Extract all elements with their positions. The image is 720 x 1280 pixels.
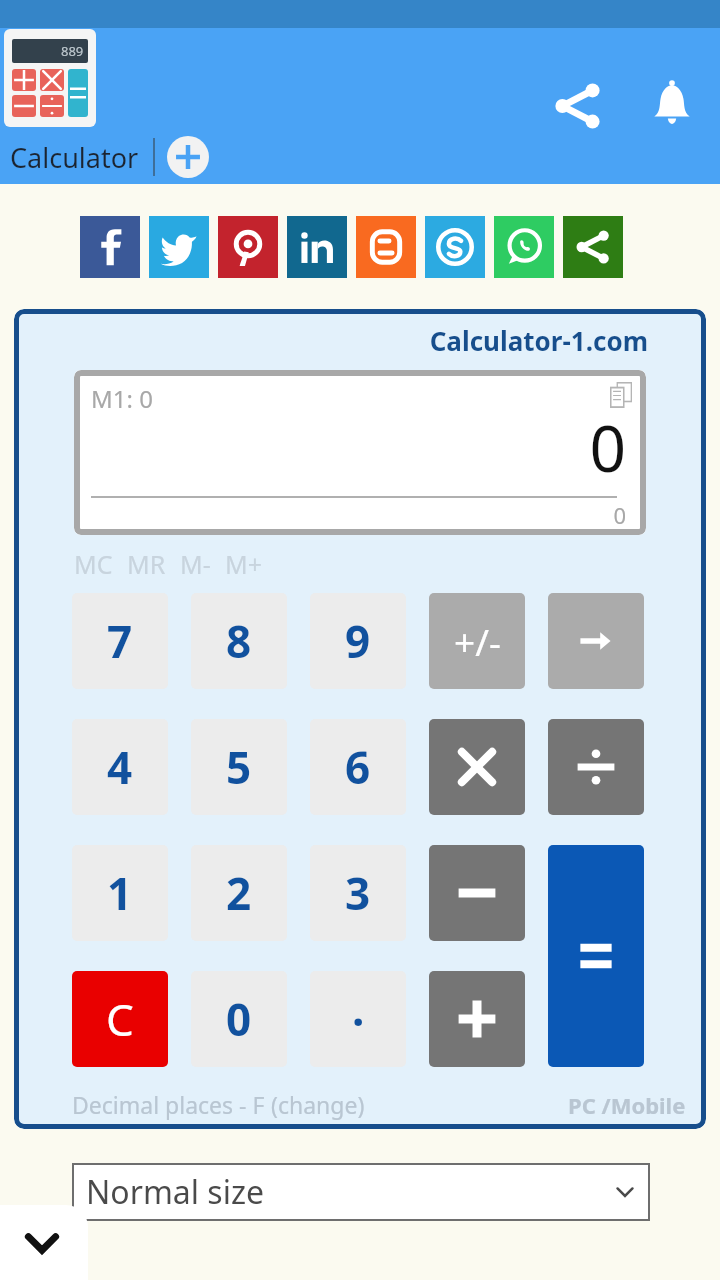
button[interactable]: Clear <box>72 971 168 1067</box>
button[interactable]: Facebook <box>80 216 140 278</box>
button[interactable]: M1: 0 <box>74 370 646 535</box>
button[interactable]: Collapse <box>0 1205 88 1280</box>
staticText: C <box>106 989 134 1049</box>
button[interactable]: WhatsApp <box>494 216 554 278</box>
staticText: 7 <box>107 611 133 671</box>
staticText: 5 <box>226 737 252 797</box>
staticText: . <box>352 979 365 1039</box>
button[interactable]: 3 <box>310 845 406 941</box>
button[interactable]: Plus minus <box>429 593 525 689</box>
staticText: 0 <box>74 404 626 491</box>
staticText: MC <box>74 547 113 581</box>
button[interactable]: 4 <box>72 719 168 815</box>
button[interactable]: Decimal point <box>310 971 406 1067</box>
button[interactable]: Backspace <box>548 593 644 689</box>
button[interactable]: 7 <box>72 593 168 689</box>
staticText: 0 <box>226 989 252 1049</box>
staticText: 0 <box>74 500 626 530</box>
staticText: Normal size <box>86 1170 265 1214</box>
staticText: +/- <box>454 616 501 666</box>
staticText: M+ <box>225 547 262 581</box>
button[interactable]: 5 <box>191 719 287 815</box>
staticText: 4 <box>107 737 133 797</box>
button[interactable]: Notifications <box>634 68 710 144</box>
staticText: 1 <box>107 863 133 923</box>
button[interactable]: Multiply <box>429 719 525 815</box>
button[interactable]: Divide <box>548 719 644 815</box>
button[interactable]: 2 <box>191 845 287 941</box>
other: Calculator icon <box>4 29 96 127</box>
staticText: 6 <box>345 737 371 797</box>
staticText: Calculator-1.com <box>28 323 648 358</box>
button[interactable]: Pinterest <box>218 216 278 278</box>
staticText: Calculator <box>10 139 139 176</box>
button[interactable]: Blogger <box>356 216 416 278</box>
button[interactable]: (change) <box>271 1089 365 1120</box>
button[interactable]: Share <box>563 216 623 278</box>
button[interactable]: M+ <box>225 547 262 581</box>
button[interactable]: PC /Mobile <box>568 1090 686 1120</box>
button[interactable]: Plus <box>429 971 525 1067</box>
staticText: 2 <box>226 863 252 923</box>
button[interactable]: 8 <box>191 593 287 689</box>
staticText: PC /Mobile <box>568 1090 686 1120</box>
button[interactable]: Skype <box>425 216 485 278</box>
button[interactable]: Equals <box>548 845 644 1067</box>
button[interactable]: LinkedIn <box>287 216 347 278</box>
staticText: (change) <box>271 1089 365 1120</box>
button[interactable]: MR <box>127 547 166 581</box>
button[interactable]: MC <box>74 547 113 581</box>
button[interactable]: Add tab <box>167 136 209 178</box>
staticText: 889 <box>61 42 84 60</box>
staticText: M1: 0 <box>91 382 153 415</box>
staticText: 3 <box>345 863 371 923</box>
button[interactable]: 6 <box>310 719 406 815</box>
staticText: Decimal places - F <box>72 1089 271 1120</box>
button[interactable]: Twitter <box>149 216 209 278</box>
button[interactable]: 0 <box>191 971 287 1067</box>
button[interactable]: Share <box>540 68 616 144</box>
button[interactable]: M- <box>180 547 211 581</box>
staticText: 8 <box>226 611 252 671</box>
button[interactable]: 9 <box>310 593 406 689</box>
button[interactable]: Calculator <box>10 139 139 176</box>
button[interactable]: 1 <box>72 845 168 941</box>
staticText: 9 <box>345 611 371 671</box>
staticText: MR <box>127 547 166 581</box>
button[interactable]: Minus <box>429 845 525 941</box>
button[interactable]: Normal size <box>72 1163 650 1221</box>
staticText: M- <box>180 547 211 581</box>
